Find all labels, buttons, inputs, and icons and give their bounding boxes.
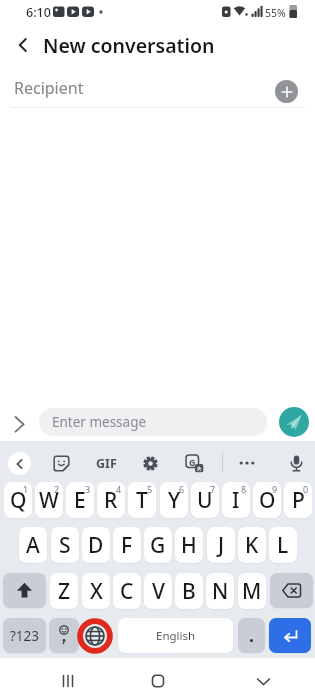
staticText: A: [26, 531, 40, 560]
button[interactable]: [80, 618, 110, 654]
button[interactable]: M: [238, 573, 266, 609]
staticText: 2: [54, 483, 60, 495]
staticText: V: [152, 577, 165, 606]
staticText: ?123: [10, 627, 40, 645]
staticText: 0: [303, 483, 309, 495]
button[interactable]: J: [207, 527, 235, 563]
staticText: E: [74, 486, 86, 515]
button[interactable]: Enter message: [39, 408, 267, 436]
button[interactable]: H: [175, 527, 203, 563]
button[interactable]: P: [284, 482, 312, 518]
staticText: Q: [10, 486, 27, 515]
staticText: 5: [147, 483, 153, 495]
button[interactable]: ?123: [3, 618, 46, 653]
staticText: B: [182, 577, 196, 606]
button[interactable]: [52, 454, 71, 473]
staticText: M: [242, 577, 262, 606]
staticText: G: [150, 531, 166, 560]
staticText: W: [39, 486, 59, 515]
button[interactable]: X: [82, 573, 110, 609]
staticText: J: [218, 531, 225, 560]
staticText: Z: [58, 577, 71, 606]
staticText: L: [277, 531, 289, 560]
button[interactable]: [269, 618, 311, 653]
button[interactable]: [238, 618, 265, 653]
staticText: Recipient: [14, 77, 84, 99]
button[interactable]: G: [144, 527, 172, 563]
staticText: F: [121, 531, 133, 560]
staticText: 8: [241, 483, 247, 495]
staticText: N: [212, 577, 229, 606]
button[interactable]: W: [35, 482, 63, 518]
staticText: G: [189, 456, 196, 468]
button[interactable]: N: [206, 573, 234, 609]
button[interactable]: [8, 30, 38, 60]
staticText: X: [90, 577, 103, 606]
staticText: R: [104, 486, 118, 515]
staticText: English: [156, 628, 196, 644]
button[interactable]: Recipient: [0, 70, 315, 108]
button[interactable]: V: [144, 573, 172, 609]
staticText: K: [245, 531, 259, 560]
staticText: U: [197, 486, 213, 515]
button[interactable]: A: [19, 527, 47, 563]
button[interactable]: [141, 454, 159, 472]
staticText: 6: [179, 483, 185, 495]
staticText: New conversation: [43, 32, 215, 59]
button[interactable]: D: [82, 527, 110, 563]
button[interactable]: [275, 80, 298, 103]
button[interactable]: R: [97, 482, 125, 518]
button[interactable]: O: [253, 482, 281, 518]
button[interactable]: [249, 668, 278, 694]
button[interactable]: [234, 454, 260, 472]
staticText: H: [181, 531, 197, 560]
button[interactable]: [287, 452, 305, 475]
staticText: S: [59, 531, 71, 560]
button[interactable]: F: [113, 527, 141, 563]
staticText: 9: [272, 483, 278, 495]
staticText: Enter message: [52, 413, 147, 431]
button[interactable]: Q: [4, 482, 32, 518]
staticText: 4: [116, 483, 122, 495]
staticText: P: [292, 486, 305, 515]
button[interactable]: [279, 407, 309, 437]
button[interactable]: Y: [160, 482, 188, 518]
staticText: 1: [23, 483, 29, 495]
button[interactable]: [53, 668, 82, 694]
staticText: 7: [210, 483, 216, 495]
button[interactable]: [3, 573, 46, 608]
button[interactable]: [49, 618, 79, 653]
button[interactable]: [8, 452, 31, 475]
staticText: I: [232, 486, 240, 515]
button[interactable]: I: [222, 482, 250, 518]
button[interactable]: B: [175, 573, 203, 609]
button[interactable]: [270, 573, 313, 608]
staticText: 6:10: [26, 4, 51, 21]
button[interactable]: Z: [50, 573, 78, 609]
staticText: T: [136, 486, 148, 515]
staticText: Y: [168, 486, 181, 515]
button[interactable]: U: [191, 482, 219, 518]
button[interactable]: English: [118, 618, 233, 653]
button[interactable]: K: [238, 527, 266, 563]
staticText: O: [259, 486, 276, 515]
button[interactable]: GIF: [93, 454, 120, 472]
button[interactable]: S: [51, 527, 79, 563]
staticText: GIF: [96, 455, 117, 472]
staticText: 3: [85, 483, 91, 495]
button[interactable]: G: [184, 454, 204, 473]
button[interactable]: C: [113, 573, 141, 609]
staticText: C: [120, 577, 134, 606]
button[interactable]: [143, 668, 172, 694]
staticText: D: [88, 531, 104, 560]
staticText: 55%: [265, 6, 286, 20]
button[interactable]: L: [269, 527, 297, 563]
button[interactable]: E: [66, 482, 94, 518]
button[interactable]: T: [128, 482, 156, 518]
